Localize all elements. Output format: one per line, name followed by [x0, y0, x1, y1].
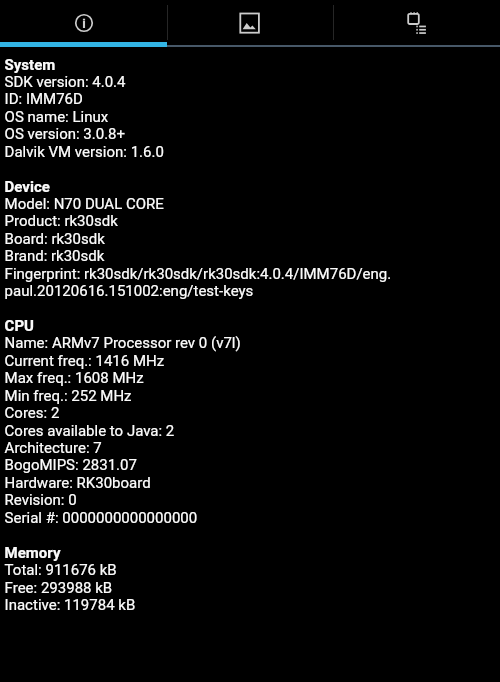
staticText: OS name: Linux [5, 108, 109, 126]
staticText: Min freq.: 252 MHz [5, 387, 132, 405]
staticText: Architecture: 7 [5, 439, 103, 457]
staticText: Board: rk30sdk [5, 230, 106, 248]
staticText: Max freq.: 1608 MHz [5, 369, 145, 387]
button[interactable]: System information tab [0, 0, 167, 47]
staticText: SDK version: 4.0.4 [5, 73, 126, 91]
staticText: Revision: 0 [5, 491, 78, 509]
staticText: Serial #: 0000000000000000 [5, 509, 198, 527]
staticText: paul.20120616.151002:eng/test-keys [5, 282, 254, 300]
staticText: Current freq.: 1416 MHz [5, 352, 165, 370]
staticText: Dalvik VM version: 1.6.0 [5, 143, 165, 161]
staticText: CPU [5, 317, 35, 335]
staticText: Memory [5, 544, 61, 562]
staticText: Model: N70 DUAL CORE [5, 195, 165, 213]
staticText: Total: 911676 kB [5, 561, 118, 579]
button[interactable]: Display information tab [167, 0, 333, 47]
staticText: Name: ARMv7 Processor rev 0 (v7l) [5, 334, 242, 352]
staticText: System [5, 56, 56, 74]
staticText: Inactive: 119784 kB [5, 596, 136, 614]
staticText: Product: rk30sdk [5, 212, 119, 230]
staticText: Free: 293988 kB [5, 578, 113, 596]
staticText: Device [5, 178, 51, 196]
staticText: Cores: 2 [5, 404, 60, 422]
staticText: Brand: rk30sdk [5, 247, 105, 265]
staticText: OS version: 3.0.8+ [5, 125, 126, 143]
staticText: BogoMIPS: 2831.07 [5, 456, 138, 474]
staticText: ID: IMM76D [5, 90, 84, 108]
button[interactable]: Applications tab [333, 0, 500, 47]
staticText: Cores available to Java: 2 [5, 422, 175, 440]
staticText: Fingerprint: rk30sdk/rk30sdk/rk30sdk:4.0… [5, 265, 392, 283]
staticText: Hardware: RK30board [5, 474, 152, 492]
